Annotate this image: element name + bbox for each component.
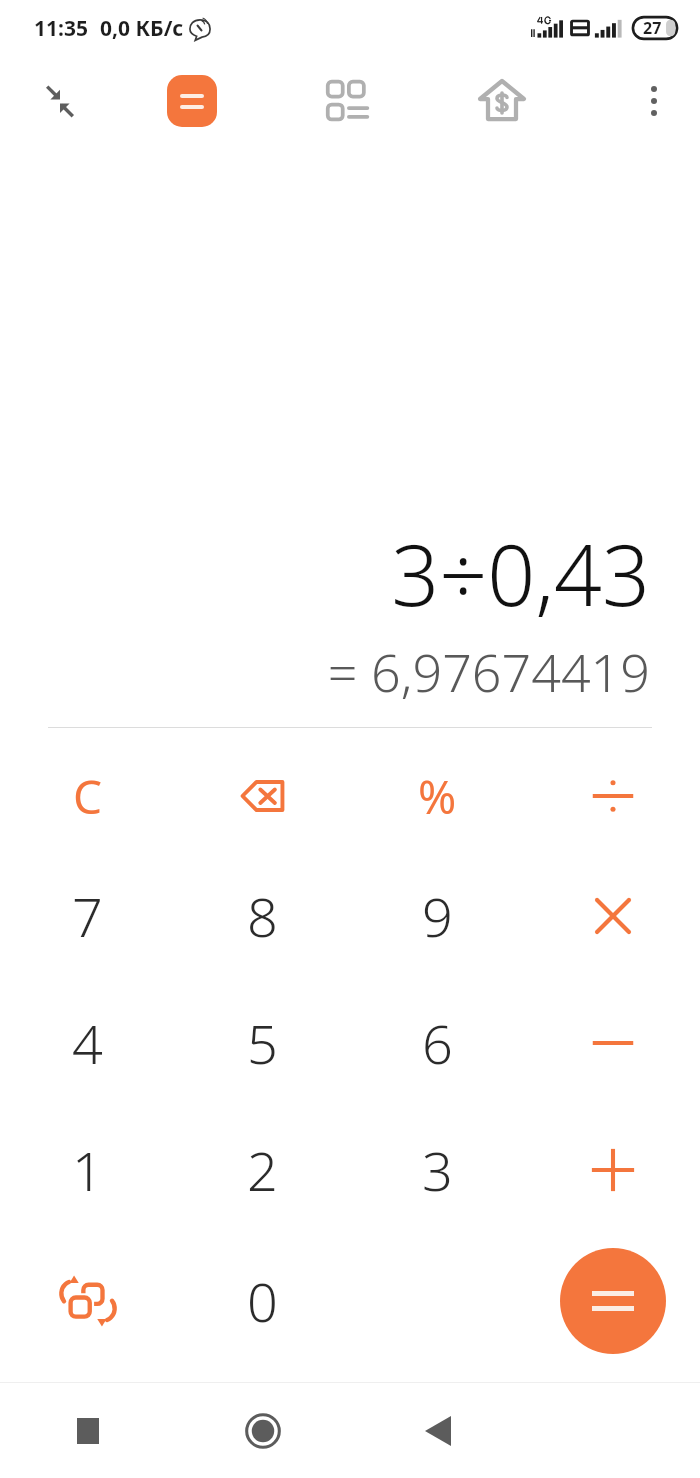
staticText: 8	[247, 879, 278, 953]
staticText: 3	[422, 1133, 453, 1207]
button[interactable]	[525, 852, 700, 979]
button[interactable]: C	[0, 740, 175, 852]
staticText: 4	[72, 1006, 103, 1080]
button[interactable]: Back	[350, 1383, 525, 1478]
button[interactable]: Backspace	[175, 740, 350, 852]
staticText: 6	[422, 1006, 453, 1080]
staticText: 9	[422, 879, 453, 953]
button[interactable]: Recents	[0, 1383, 175, 1478]
staticText: 0	[247, 1264, 278, 1338]
button[interactable]	[525, 1106, 700, 1233]
button[interactable]: 1	[0, 1106, 175, 1233]
staticText: 7	[72, 879, 103, 953]
button[interactable]: 9	[350, 852, 525, 979]
staticText: C	[73, 765, 103, 828]
button[interactable]: More options	[618, 65, 690, 137]
staticText: 3÷0,43	[391, 516, 650, 630]
button[interactable]: Collapse	[24, 65, 96, 137]
staticText: 27	[643, 17, 662, 39]
button[interactable]: 5	[175, 979, 350, 1106]
button[interactable]: 2	[175, 1106, 350, 1233]
staticText: 2	[247, 1133, 278, 1207]
button[interactable]: 0	[175, 1233, 350, 1368]
button[interactable]: 4	[0, 979, 175, 1106]
staticText: %	[418, 765, 457, 828]
button[interactable]: 7	[0, 852, 175, 979]
button[interactable]: 8	[175, 852, 350, 979]
staticText: 5	[247, 1006, 278, 1080]
button[interactable]: Home	[175, 1383, 350, 1478]
button[interactable]	[525, 740, 700, 852]
button[interactable]: 6	[350, 979, 525, 1106]
button[interactable]: Equals	[560, 1248, 666, 1354]
staticText: 11:35	[34, 14, 88, 43]
button[interactable]: 3	[350, 1106, 525, 1233]
staticText: = 6,97674419	[327, 636, 650, 707]
staticText: 0,0 КБ/с	[100, 14, 184, 43]
button[interactable]: Convert	[0, 1233, 175, 1368]
button[interactable]: Converters	[310, 63, 386, 139]
button[interactable]: Loan calculator	[464, 63, 540, 139]
staticText: 1	[72, 1133, 103, 1207]
button[interactable]: Calculator	[156, 65, 228, 137]
button[interactable]	[525, 979, 700, 1106]
button[interactable]: %	[350, 740, 525, 852]
